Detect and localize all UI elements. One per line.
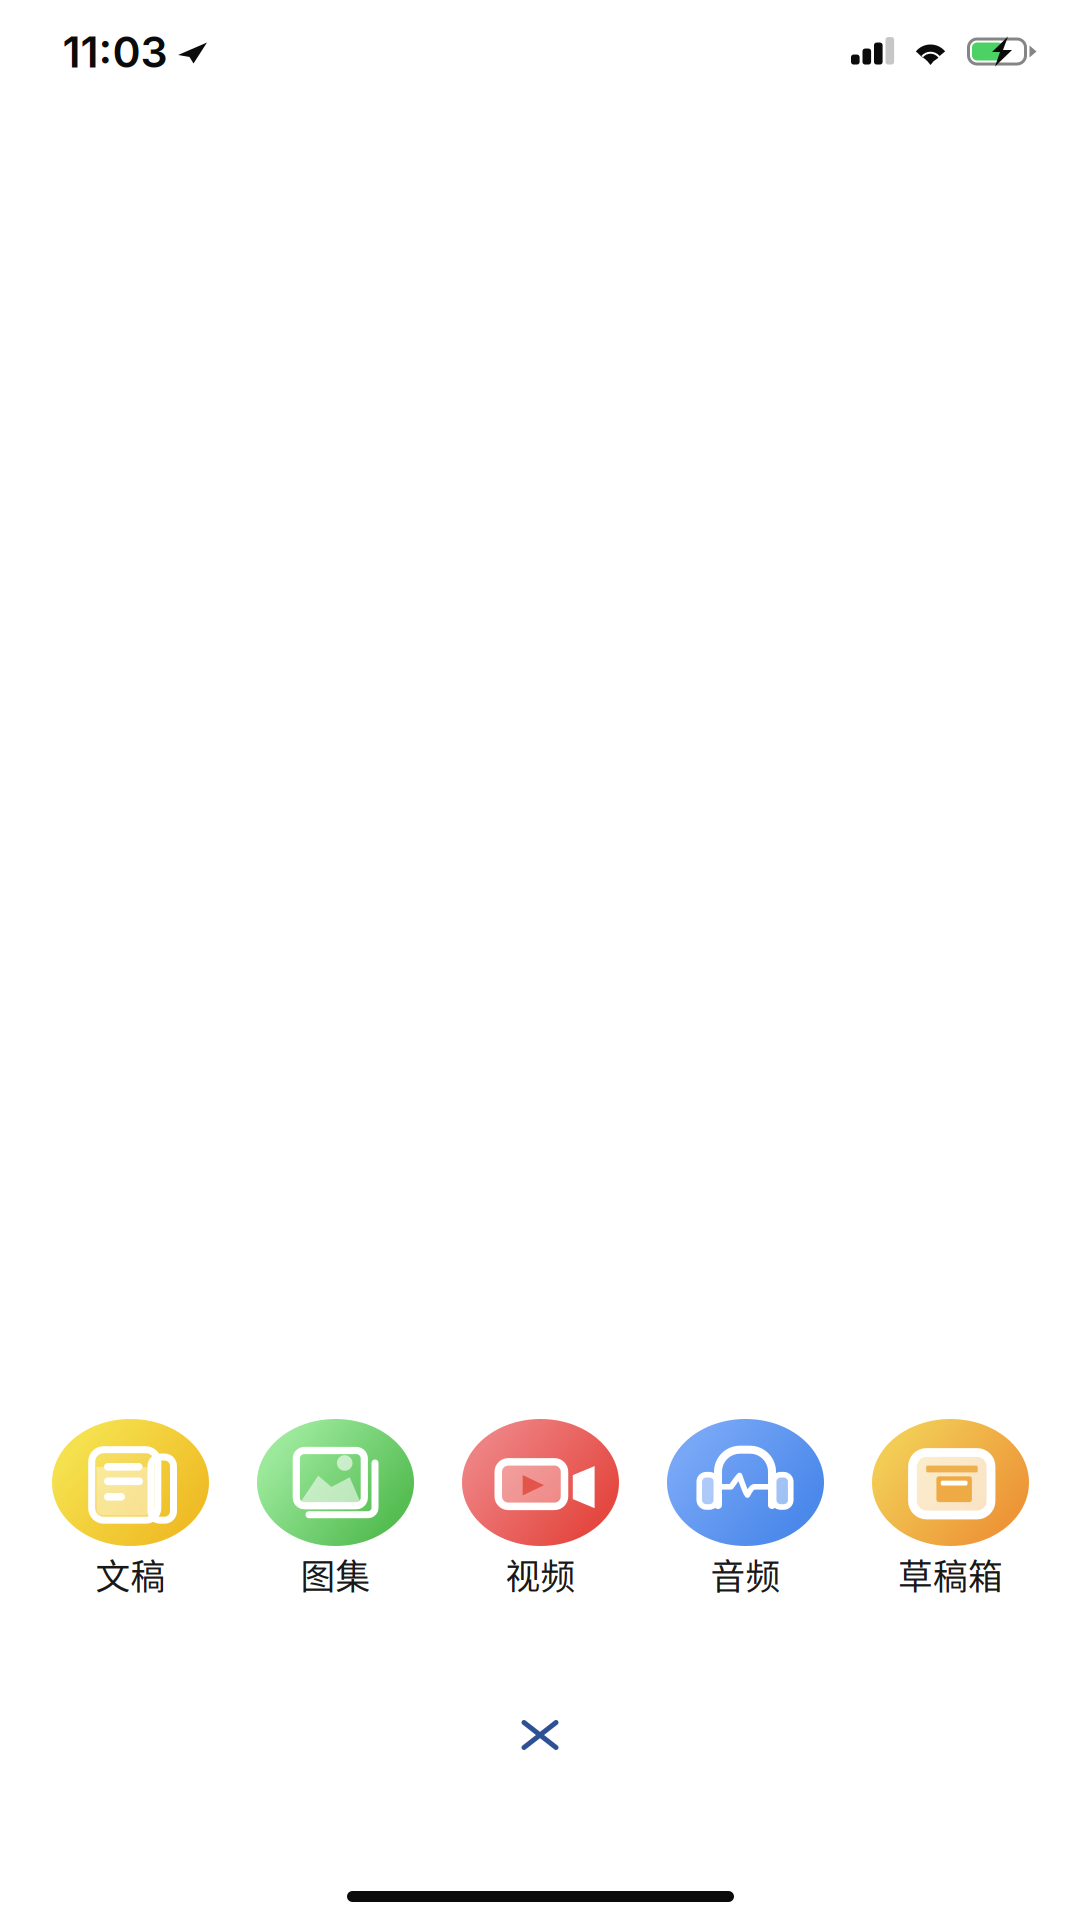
button[interactable]: 视频 xyxy=(438,1395,643,1605)
button[interactable]: 图集 xyxy=(233,1395,438,1605)
button[interactable]: Close xyxy=(475,1675,605,1795)
staticText: 视频 xyxy=(505,1549,575,1600)
staticText: 11:03 xyxy=(62,26,167,78)
button[interactable]: 草稿箱 xyxy=(848,1395,1053,1605)
staticText: 草稿箱 xyxy=(898,1549,1003,1600)
button[interactable]: 文稿 xyxy=(28,1395,233,1605)
staticText: 文稿 xyxy=(95,1549,165,1600)
staticText: 图集 xyxy=(300,1549,370,1600)
staticText: 音频 xyxy=(710,1549,780,1600)
button[interactable]: 音频 xyxy=(643,1395,848,1605)
